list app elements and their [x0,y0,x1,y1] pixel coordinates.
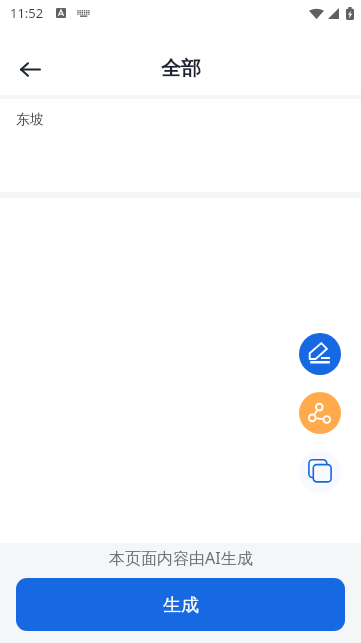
button[interactable]: Share [299,392,341,434]
staticText: 全部 [161,56,201,81]
staticText: 生成 [163,594,199,617]
button[interactable]: Back [8,47,52,91]
button[interactable]: 东坡 [0,99,361,192]
staticText: 东坡 [16,111,44,129]
staticText: 11:52 [10,4,44,22]
button[interactable]: Edit [299,333,341,375]
staticText: 本页面内容由AI生成 [109,547,253,569]
button[interactable]: 生成 [16,578,345,631]
button[interactable]: Copy [299,451,341,493]
